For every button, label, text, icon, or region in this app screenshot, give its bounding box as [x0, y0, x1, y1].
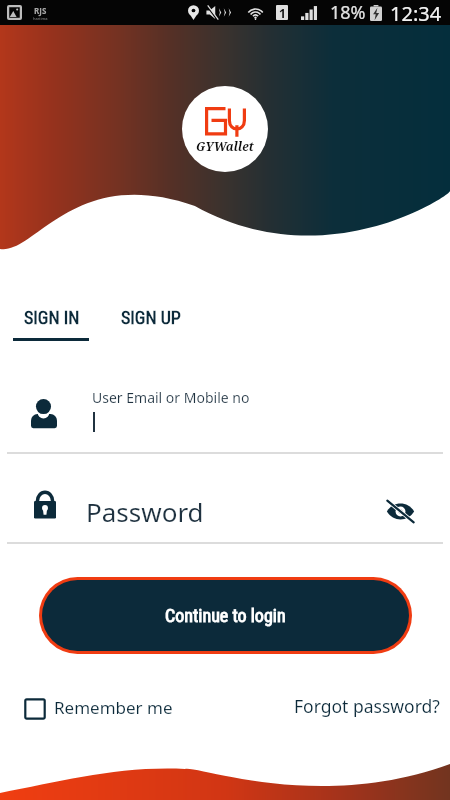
- button[interactable]: Show password: [381, 492, 419, 530]
- staticText: 12:34: [390, 0, 442, 25]
- button[interactable]: Remember me: [22, 698, 173, 722]
- staticText: User Email or Mobile no: [92, 388, 250, 407]
- staticText: SIGN UP: [121, 307, 181, 328]
- button[interactable]: Forgot password?: [294, 694, 440, 718]
- staticText: GYWallet: [196, 138, 254, 154]
- staticText: Forgot password?: [294, 694, 440, 718]
- button[interactable]: Continue to login: [42, 580, 409, 651]
- button[interactable]: User Email or Mobile no: [0, 388, 450, 442]
- button[interactable]: SIGN IN: [0, 307, 104, 343]
- staticText: SIGN IN: [24, 307, 80, 328]
- staticText: RJS: [34, 5, 47, 16]
- staticText: Remember me: [54, 696, 173, 719]
- staticText: hariima: [33, 16, 48, 21]
- staticText: Continue to login: [165, 605, 286, 626]
- staticText: Password: [86, 494, 204, 529]
- staticText: 1: [279, 5, 286, 20]
- button[interactable]: SIGN UP: [100, 307, 206, 343]
- staticText: 18%: [330, 0, 366, 25]
